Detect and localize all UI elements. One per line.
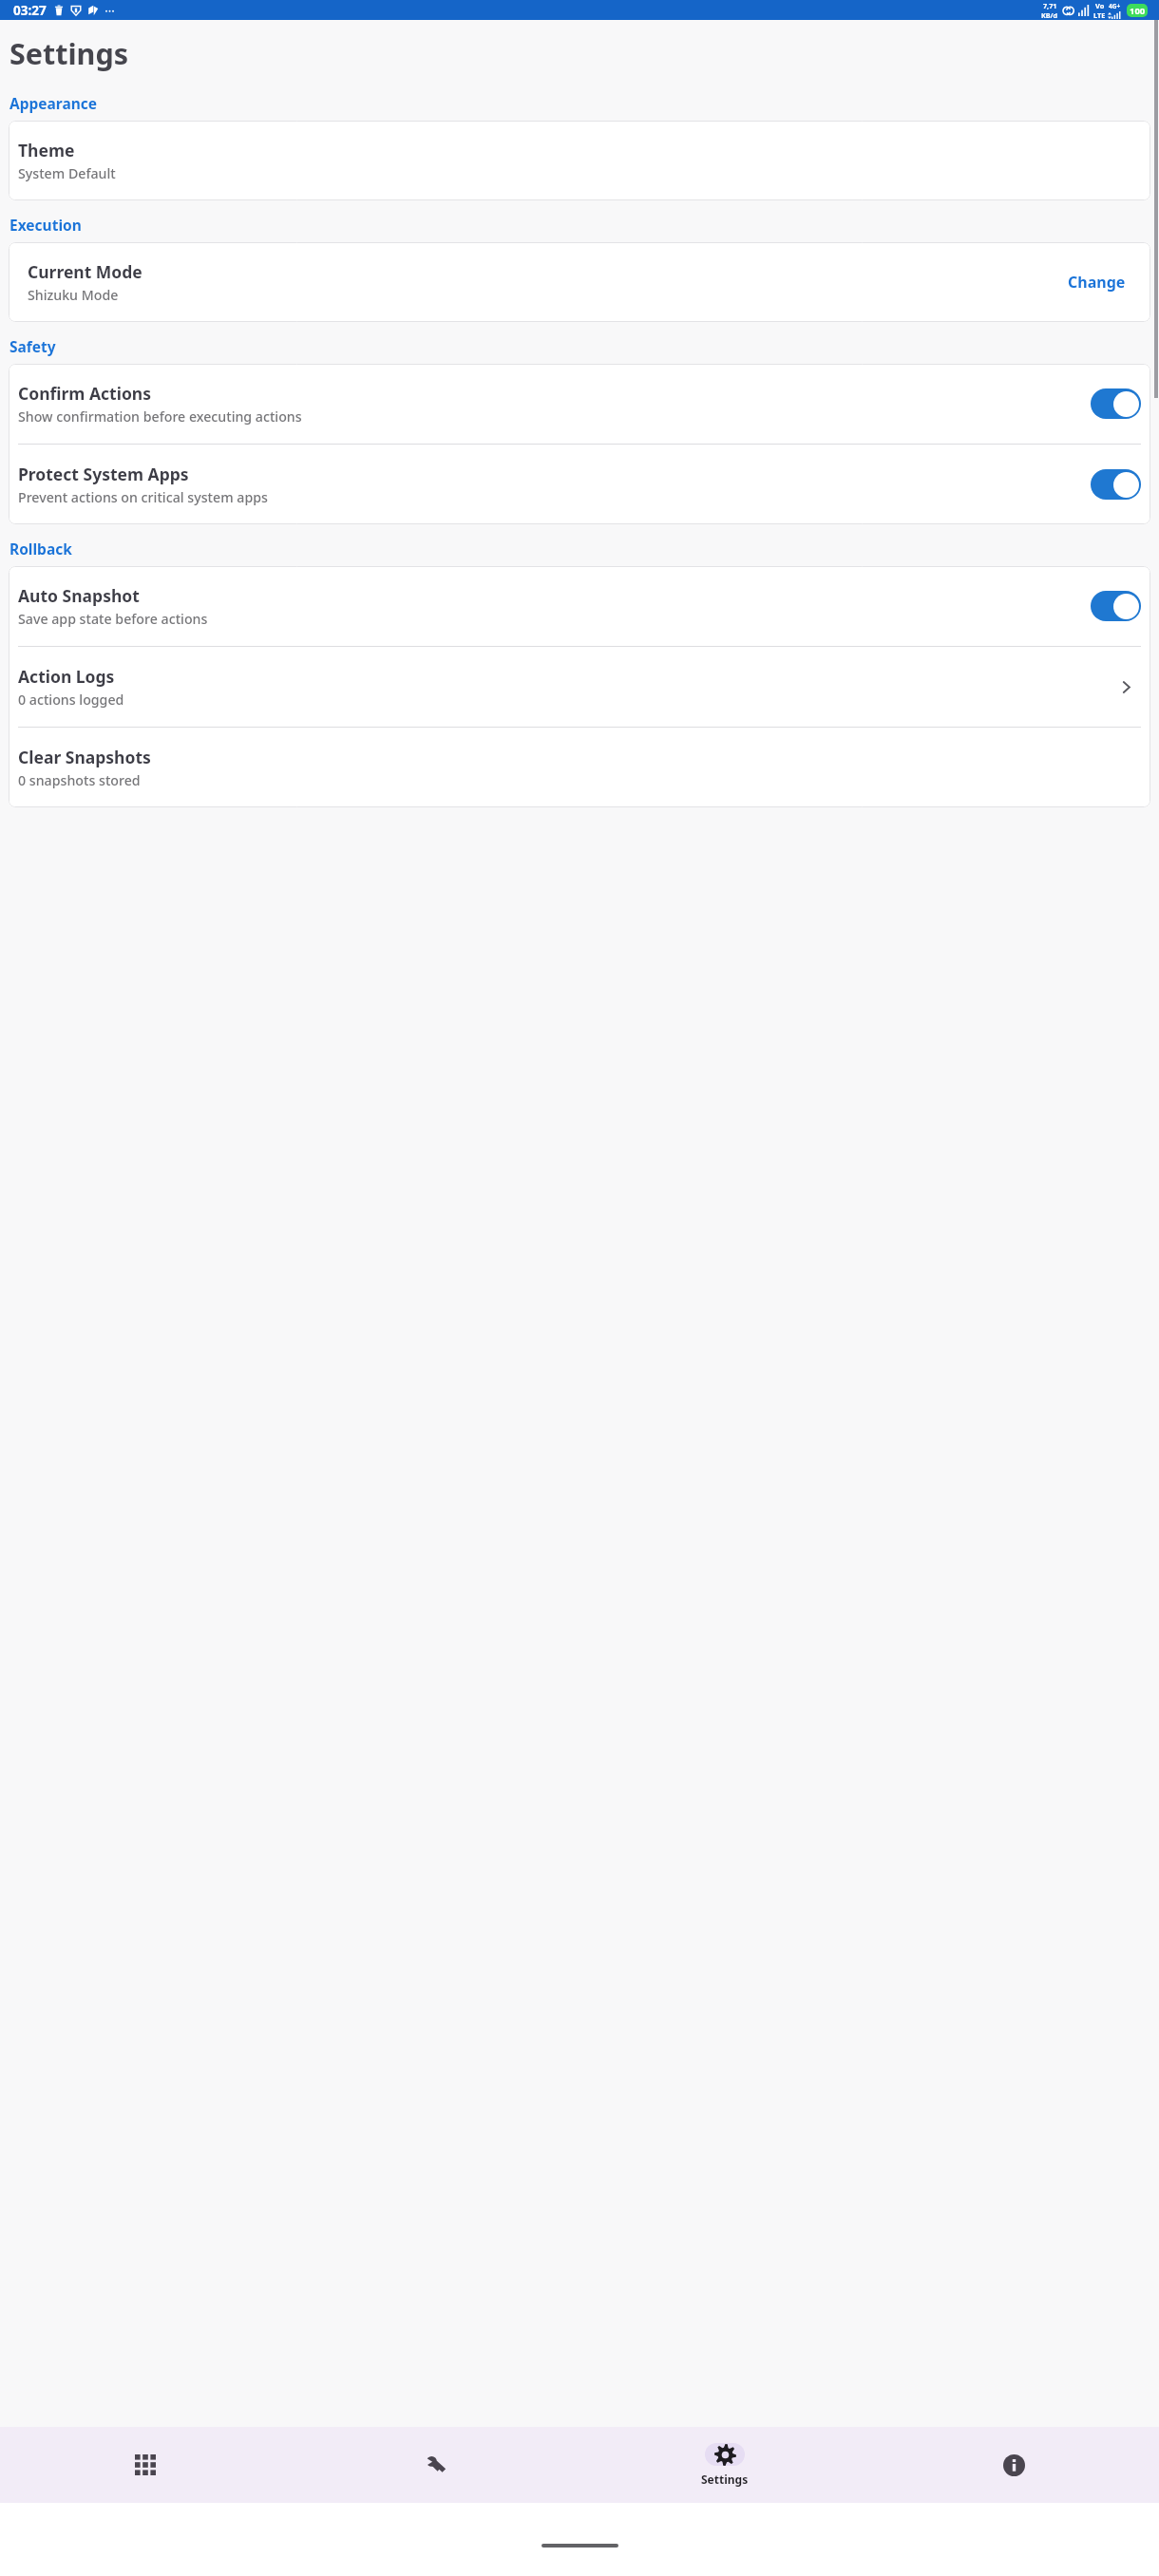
staticText: 100 [1130, 5, 1146, 17]
staticText: LTE [1093, 10, 1106, 20]
staticText: Safety [9, 336, 56, 356]
button[interactable]: Toggle [1091, 469, 1141, 500]
staticText: System Default [18, 164, 116, 182]
button[interactable]: Toggle [1091, 388, 1141, 419]
button[interactable]: Auto Snapshot [18, 566, 1141, 646]
button[interactable]: Action Logs [18, 647, 1141, 727]
staticText: Show confirmation before executing actio… [18, 407, 302, 426]
button[interactable]: Info [869, 2427, 1159, 2503]
button[interactable]: Current Mode [18, 242, 1141, 322]
button[interactable]: Theme [18, 121, 1141, 200]
staticText: Rollback [9, 539, 72, 559]
staticText: Prevent actions on critical system apps [18, 488, 268, 506]
staticText: Vo [1095, 1, 1105, 10]
staticText: Save app state before actions [18, 610, 208, 628]
staticText: Execution [9, 215, 82, 235]
staticText: 0 actions logged [18, 691, 124, 709]
staticText: 7,71 [1043, 1, 1057, 10]
button[interactable]: Toggle [1091, 591, 1141, 621]
staticText: Confirm Actions [18, 382, 152, 405]
staticText: Auto Snapshot [18, 584, 140, 607]
button[interactable]: Confirm Actions [18, 364, 1141, 444]
staticText: 03:27 [13, 2, 47, 19]
button[interactable]: Apps [0, 2427, 290, 2503]
button[interactable]: Tools [290, 2427, 579, 2503]
staticText: Settings [701, 2472, 749, 2487]
staticText: Protect System Apps [18, 463, 189, 485]
staticText: 0 snapshots stored [18, 771, 141, 789]
staticText: 4G+ [1109, 2, 1121, 10]
staticText: Clear Snapshots [18, 746, 151, 768]
other: Open Action Logs [1118, 679, 1134, 695]
button[interactable]: Clear Snapshots [18, 728, 1141, 807]
staticText: KB/d [1041, 10, 1058, 20]
button[interactable]: Change [1062, 268, 1131, 296]
staticText: Shizuku Mode [28, 286, 119, 304]
staticText: Action Logs [18, 665, 115, 688]
button[interactable]: Settings [579, 2427, 869, 2503]
staticText: Current Mode [28, 260, 142, 283]
staticText: Theme [18, 139, 75, 161]
staticText: Appearance [9, 93, 98, 113]
button[interactable]: Protect System Apps [18, 445, 1141, 524]
staticText: Settings [9, 33, 129, 73]
staticText: Change [1068, 272, 1126, 293]
